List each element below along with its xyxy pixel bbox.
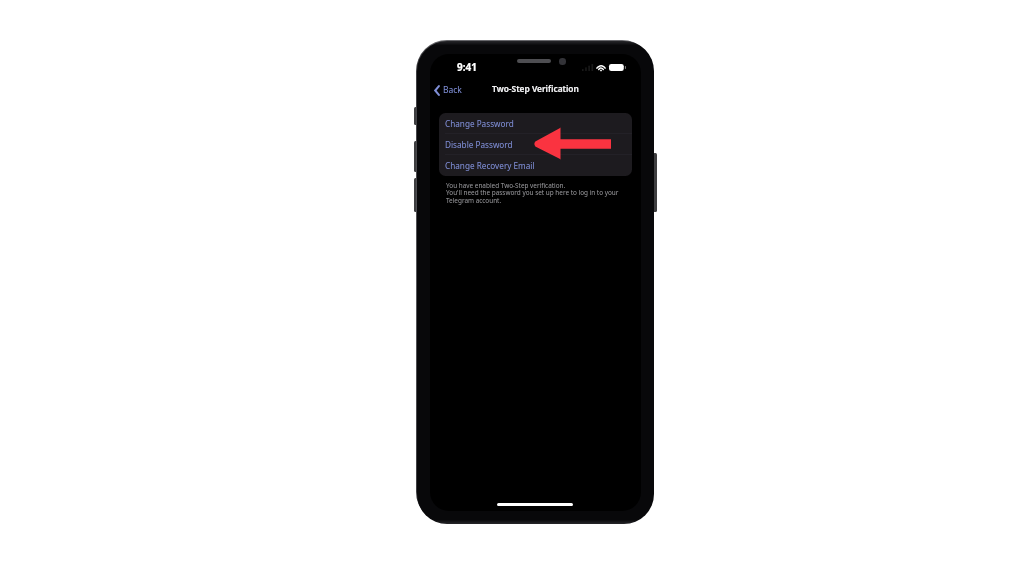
staticText: Change Password	[445, 118, 514, 129]
button[interactable]: Disable Password	[439, 134, 632, 155]
staticText: Two-Step Verification	[430, 83, 641, 94]
button[interactable]: Back	[434, 82, 462, 98]
staticText: Back	[443, 84, 462, 96]
staticText: Change Recovery Email	[445, 160, 535, 171]
staticText: You have enabled Two-Step verification. …	[446, 181, 636, 205]
staticText: 9:41	[457, 60, 477, 74]
staticText: Disable Password	[445, 139, 513, 150]
button[interactable]: Change Recovery Email	[439, 155, 632, 176]
button[interactable]: Change Password	[439, 113, 632, 134]
